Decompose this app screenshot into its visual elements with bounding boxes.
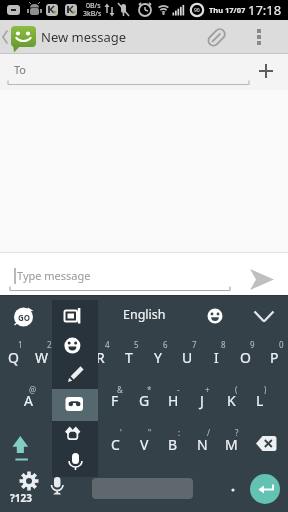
button[interactable]: [240, 252, 288, 295]
button[interactable]: To: [0, 54, 288, 90]
button[interactable]: M: [217, 430, 245, 458]
staticText: New message: [41, 28, 127, 46]
staticText: W: [35, 348, 49, 367]
button[interactable]: [0, 252, 230, 295]
staticText: 7: [192, 339, 197, 350]
button[interactable]: O: [231, 343, 259, 371]
staticText: English: [123, 306, 166, 323]
staticText: J: [200, 391, 204, 410]
staticText: 9: [250, 339, 255, 350]
button[interactable]: [52, 331, 98, 361]
staticText: 1: [18, 339, 23, 350]
staticText: G: [139, 391, 150, 410]
staticText: O: [240, 348, 251, 367]
staticText: ): [264, 384, 267, 395]
staticText: Y: [154, 348, 162, 367]
staticText: 5: [134, 339, 139, 350]
button[interactable]: [52, 300, 98, 330]
staticText: 0B/s: [86, 1, 101, 11]
button[interactable]: [42, 465, 72, 507]
button[interactable]: New message: [0, 20, 288, 53]
staticText: U: [182, 348, 193, 367]
staticText: F: [111, 391, 119, 410]
button[interactable]: [248, 301, 280, 327]
button[interactable]: F: [101, 386, 129, 414]
button[interactable]: GO: [12, 305, 36, 329]
button[interactable]: T: [115, 343, 143, 371]
staticText: 90: [194, 7, 200, 14]
button[interactable]: C: [101, 430, 129, 458]
staticText: L: [256, 391, 264, 410]
staticText: V: [140, 435, 149, 454]
staticText: 17:18: [248, 1, 282, 19]
staticText: 3kB/s: [83, 9, 102, 19]
button[interactable]: N: [188, 430, 216, 458]
button[interactable]: [52, 389, 98, 421]
button[interactable]: U: [173, 343, 201, 371]
staticText: N: [197, 435, 208, 454]
button[interactable]: G: [130, 386, 158, 414]
staticText: Q: [8, 348, 19, 367]
button[interactable]: W: [28, 343, 56, 371]
staticText: @: [29, 384, 37, 395]
button[interactable]: K: [217, 386, 245, 414]
button[interactable]: R: [86, 343, 114, 371]
staticText: 2: [47, 339, 52, 350]
button[interactable]: [248, 427, 288, 467]
button[interactable]: [4, 423, 44, 468]
staticText: 0: [279, 339, 284, 350]
button[interactable]: V: [130, 430, 158, 458]
staticText: To: [14, 62, 27, 77]
button[interactable]: B: [159, 430, 187, 458]
staticText: Type message: [17, 268, 91, 283]
button[interactable]: J: [188, 386, 216, 414]
button[interactable]: ?123: [0, 460, 46, 512]
staticText: 4: [105, 339, 110, 350]
button[interactable]: [203, 304, 227, 328]
staticText: T: [125, 348, 133, 367]
staticText: -: [177, 384, 180, 395]
staticText: R: [96, 348, 105, 367]
staticText: K: [227, 391, 236, 410]
staticText: I: [214, 348, 219, 367]
staticText: 6: [163, 339, 168, 350]
staticText: +: [205, 384, 210, 395]
staticText: ?123: [10, 491, 32, 505]
staticText: GO: [18, 312, 31, 323]
button[interactable]: [52, 451, 98, 475]
staticText: ': [120, 427, 122, 438]
staticText: /: [207, 427, 210, 438]
staticText: C: [111, 435, 120, 454]
button[interactable]: Y: [144, 343, 172, 371]
button[interactable]: L: [246, 386, 274, 414]
staticText: (: [235, 384, 238, 395]
button[interactable]: [52, 422, 98, 451]
button[interactable]: [52, 361, 98, 389]
button[interactable]: H: [159, 386, 187, 414]
button[interactable]: Q: [0, 343, 27, 371]
staticText: &: [117, 384, 123, 395]
staticText: B: [168, 435, 178, 454]
staticText: A: [24, 391, 33, 410]
staticText: Thu 17/07: [209, 5, 246, 15]
staticText: :: [178, 427, 181, 438]
staticText: ?: [235, 427, 239, 438]
staticText: *: [147, 384, 152, 395]
button[interactable]: [250, 474, 280, 504]
staticText: 8: [221, 339, 226, 350]
button[interactable]: P: [260, 343, 288, 371]
button[interactable]: A: [14, 386, 42, 414]
button[interactable]: I: [202, 343, 230, 371]
staticText: M: [225, 435, 238, 454]
staticText: H: [168, 391, 179, 410]
staticText: P: [270, 348, 279, 367]
staticText: ": [148, 427, 152, 438]
